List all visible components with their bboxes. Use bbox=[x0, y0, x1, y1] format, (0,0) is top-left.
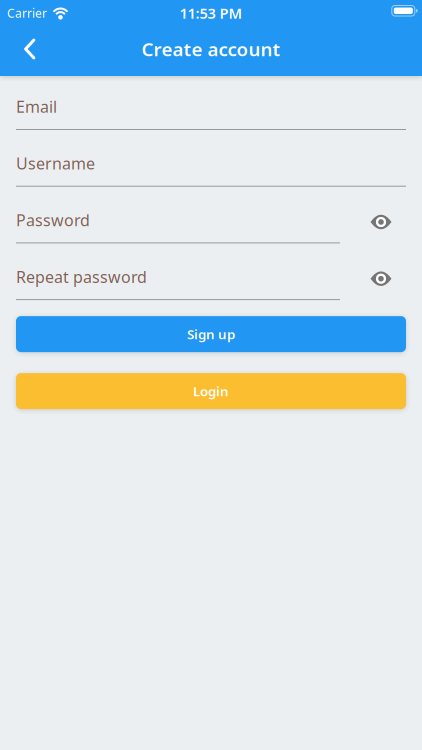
button[interactable]: Back bbox=[0, 27, 55, 71]
staticText: Carrier bbox=[7, 5, 47, 21]
staticText: Repeat password bbox=[16, 266, 147, 287]
staticText: Create account bbox=[141, 37, 280, 61]
staticText: Password bbox=[16, 209, 90, 231]
staticText: Sign up bbox=[187, 325, 235, 343]
button[interactable]: Show password bbox=[370, 272, 391, 286]
button[interactable]: Sign up bbox=[16, 316, 406, 352]
staticText: Username bbox=[16, 153, 95, 174]
staticText: Email bbox=[16, 96, 57, 117]
button[interactable]: Login bbox=[16, 373, 406, 409]
staticText: 11:53 PM bbox=[179, 3, 242, 23]
staticText: Login bbox=[193, 382, 229, 400]
button[interactable]: Show password bbox=[370, 215, 391, 229]
